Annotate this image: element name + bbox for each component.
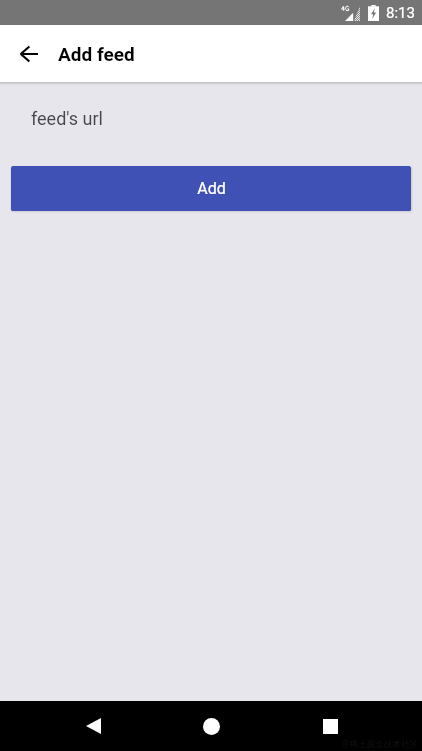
button[interactable]: Recent apps — [304, 701, 356, 751]
button[interactable]: Add — [11, 166, 411, 211]
staticText: 8:13 — [386, 4, 415, 22]
staticText: @稀土掘金技术社区 — [342, 738, 418, 750]
button[interactable]: Back — [67, 701, 119, 751]
button[interactable]: Navigate up — [11, 36, 47, 72]
staticText: Add — [197, 179, 226, 198]
staticText: feed's url — [31, 108, 103, 129]
staticText: Add feed — [58, 43, 135, 65]
button[interactable]: Home — [185, 701, 237, 751]
button[interactable]: feed's url — [0, 102, 422, 134]
